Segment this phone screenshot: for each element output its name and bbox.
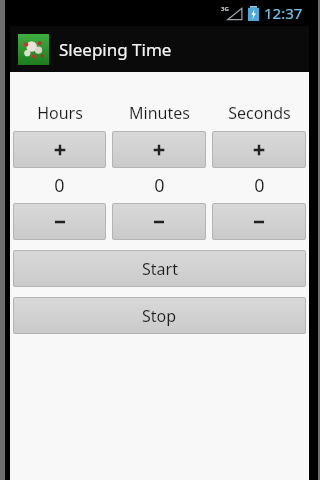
staticText: 0 [154,173,165,198]
staticText: 12:37 [264,3,303,23]
button[interactable] [13,131,106,168]
button[interactable]: Start [13,250,306,287]
button[interactable] [212,203,306,240]
button[interactable] [13,203,106,240]
staticText: Seconds [228,102,291,124]
staticText: Stop [142,305,177,327]
staticText: Sleeping Time [59,38,172,61]
button[interactable] [112,203,206,240]
button[interactable]: Stop [13,297,306,334]
staticText: 0 [54,173,65,198]
button[interactable] [212,131,306,168]
staticText: Minutes [129,102,190,124]
button[interactable] [112,131,206,168]
staticText: Hours [37,102,83,124]
staticText: 3G [221,5,229,13]
staticText: 0 [254,173,265,198]
staticText: Start [142,258,178,280]
